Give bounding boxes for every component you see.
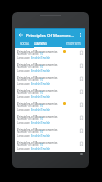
button[interactable]: Principles of Macroeconomics	[15, 61, 85, 74]
staticText: SOCIAL	[20, 42, 30, 46]
button[interactable]: More options	[76, 29, 85, 41]
staticText: Language:	[17, 147, 31, 150]
staticText: Language:	[17, 95, 31, 98]
staticText: 10	[40, 78, 44, 81]
staticText: 10	[40, 52, 44, 55]
staticText: English/English	[31, 121, 51, 124]
staticText: 10	[40, 104, 44, 107]
button[interactable]: Principles of Macroeconomics	[15, 113, 85, 126]
button[interactable]: Bookmark	[78, 76, 84, 82]
button[interactable]: Bookmark	[78, 141, 84, 147]
staticText: 10	[40, 130, 44, 133]
button[interactable]: Bookmark	[78, 50, 84, 56]
staticText: Number of cards:	[17, 130, 40, 133]
button[interactable]: Principles of Macroeconomics	[15, 139, 85, 152]
button[interactable]: Principles of Macroeconomics	[15, 126, 85, 139]
staticText: Principles of Macroeconomics	[17, 128, 58, 131]
staticText: English/English	[31, 56, 51, 59]
staticText: Number of cards:	[17, 91, 40, 94]
staticText: Language:	[17, 69, 31, 72]
staticText: 10	[40, 143, 44, 146]
button[interactable]: Principles of Macroeconomics	[15, 74, 85, 87]
staticText: Number of cards:	[17, 143, 40, 146]
staticText: Principles of Macroeconomics	[17, 102, 58, 105]
staticText: English/English	[31, 69, 51, 72]
staticText: English/English	[31, 95, 51, 98]
staticText: Principles Of Macroecon...	[26, 32, 76, 38]
staticText: 10	[40, 65, 44, 68]
staticText: Language:	[17, 121, 31, 124]
button[interactable]: Back	[15, 29, 26, 41]
staticText: English/English	[31, 147, 51, 150]
button[interactable]: Principles of Macroeconomics	[15, 87, 85, 100]
staticText: Language:	[17, 108, 31, 111]
staticText: Principles of Macroeconomics	[17, 63, 58, 66]
button[interactable]: Bookmark	[78, 115, 84, 121]
staticText: Principles of Macroeconomics	[17, 76, 58, 79]
button[interactable]: Principles of Macroeconomics	[15, 100, 85, 113]
staticText: Number of cards:	[17, 52, 40, 55]
button[interactable]: SOCIAL	[15, 41, 34, 47]
staticText: Principles of Macroeconomics	[17, 115, 58, 118]
button[interactable]: Principles of Macroeconomics	[15, 48, 85, 61]
staticText: Number of cards:	[17, 78, 40, 81]
staticText: LEARNING FLASHCARDS	[34, 42, 62, 46]
staticText: Principles of Macroeconomics	[17, 50, 58, 53]
staticText: English/English	[31, 82, 51, 85]
staticText: English/English	[31, 108, 51, 111]
button[interactable]: Bookmark	[78, 63, 84, 69]
staticText: 10	[40, 117, 44, 120]
staticText: English/English	[31, 134, 51, 137]
button[interactable]: Bookmark	[78, 128, 84, 134]
staticText: STUDY SETS	[66, 42, 81, 46]
staticText: Principles of Macroeconomics	[17, 141, 58, 144]
button[interactable]: STUDY SETS	[62, 41, 85, 47]
button[interactable]: Bookmark	[78, 89, 84, 95]
staticText: Language:	[17, 56, 31, 59]
staticText: Number of cards:	[17, 104, 40, 107]
staticText: Principles of Macroeconomics	[17, 89, 58, 92]
staticText: 10	[40, 91, 44, 94]
button[interactable]: LEARNING FLASHCARDS	[34, 41, 62, 47]
button[interactable]: Bookmark	[78, 102, 84, 108]
staticText: Language:	[17, 134, 31, 137]
staticText: Number of cards:	[17, 117, 40, 120]
staticText: Language:	[17, 82, 31, 85]
staticText: Number of cards:	[17, 65, 40, 68]
